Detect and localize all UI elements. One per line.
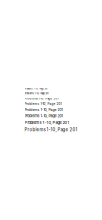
- staticText: Problems 1-10, Page 201: [24, 108, 62, 112]
- staticText: Problems 1-10, Page 201: [24, 97, 58, 100]
- staticText: Problems 1-10, Page 201: [24, 102, 61, 106]
- staticText: Problems 1-10, Page 201: [24, 127, 77, 132]
- staticText: Problems 1-10, Page 201: [24, 88, 47, 90]
- staticText: Problems 1-10, Page 201: [24, 114, 62, 118]
- staticText: Problems 1-10, Page 201: [24, 92, 48, 95]
- staticText: Problems 1-10, Page 201: [24, 120, 69, 125]
